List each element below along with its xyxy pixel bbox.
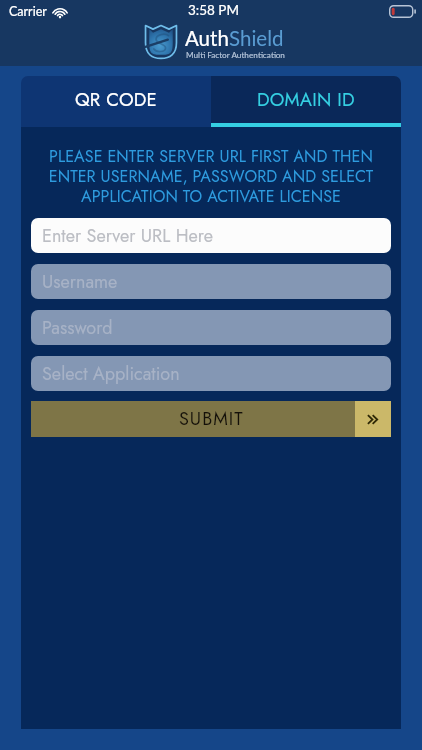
button[interactable]: DOMAIN ID [211, 76, 401, 123]
button[interactable]: Select Application [42, 356, 391, 391]
staticText: Multi Factor Authentication [186, 50, 285, 60]
button[interactable]: Username [42, 264, 391, 299]
staticText: Carrier [9, 4, 47, 19]
staticText: PLEASE ENTER SERVER URL FIRST AND THEN E… [31, 145, 391, 208]
staticText: SUBMIT [179, 406, 244, 432]
staticText: Password [42, 315, 113, 341]
button[interactable]: Next [355, 401, 391, 437]
button[interactable]: Enter Server URL Here [42, 218, 391, 253]
staticText: DOMAIN ID [257, 86, 355, 113]
staticText: QR CODE [75, 86, 157, 113]
button[interactable]: Password [42, 310, 391, 345]
staticText: Username [42, 269, 118, 295]
button[interactable]: SUBMIT [31, 401, 391, 437]
staticText: Auth [185, 26, 229, 51]
staticText: Enter Server URL Here [42, 223, 214, 249]
button[interactable]: QR CODE [21, 76, 211, 123]
staticText: Shield [229, 26, 284, 51]
staticText: Select Application [42, 361, 180, 387]
staticText: 3:58 PM [188, 2, 239, 18]
